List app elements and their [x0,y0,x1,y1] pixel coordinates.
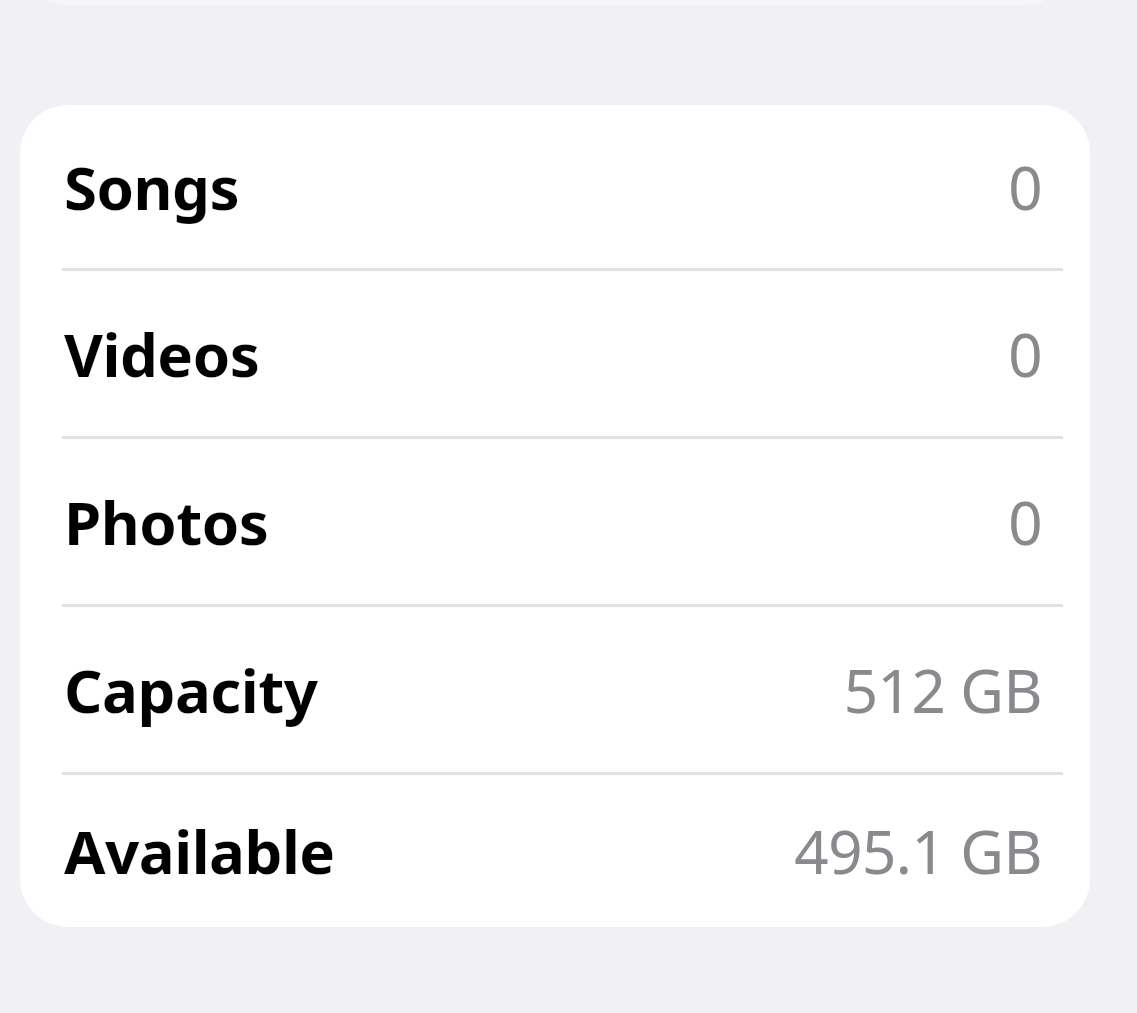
button[interactable]: Videos [20,271,1090,436]
staticText: Available [64,810,335,892]
staticText: 0 [1008,481,1042,563]
staticText: Songs [64,146,240,228]
button[interactable]: Available [20,775,1090,927]
staticText: Videos [64,313,260,395]
staticText: 495.1 GB [794,810,1042,892]
staticText: 512 GB [843,649,1042,731]
staticText: 0 [1008,146,1042,228]
staticText: Capacity [64,649,318,731]
staticText: 0 [1008,313,1042,395]
button[interactable]: Capacity [20,607,1090,772]
button[interactable]: Photos [20,439,1090,604]
button[interactable]: Songs [20,105,1090,268]
staticText: Photos [64,481,269,563]
